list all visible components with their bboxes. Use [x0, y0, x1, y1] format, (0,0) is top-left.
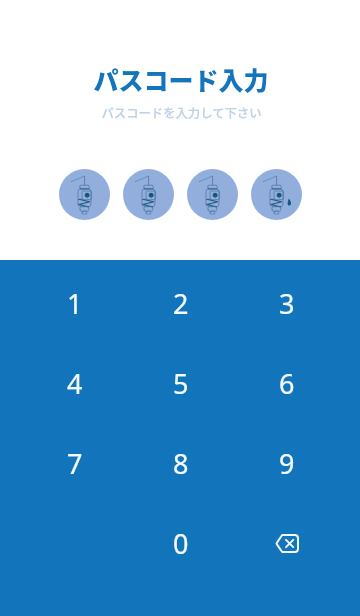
staticText: 0 — [173, 525, 189, 562]
staticText: 6 — [279, 365, 295, 402]
button[interactable]: 0 — [128, 503, 234, 583]
staticText: 7 — [67, 445, 83, 482]
button[interactable]: Delete — [234, 503, 340, 583]
button[interactable]: 6 — [234, 343, 340, 423]
staticText: 4 — [67, 365, 83, 402]
staticText: 3 — [279, 285, 295, 322]
button[interactable]: 2 — [128, 263, 234, 343]
button[interactable]: 8 — [128, 423, 234, 503]
button[interactable]: 5 — [128, 343, 234, 423]
button[interactable]: 4 — [22, 343, 128, 423]
button[interactable]: 9 — [234, 423, 340, 503]
staticText: 8 — [173, 445, 189, 482]
staticText: 5 — [173, 365, 189, 402]
staticText: 1 — [67, 285, 83, 322]
staticText: パスコード入力 — [93, 61, 269, 97]
staticText: 2 — [173, 285, 189, 322]
staticText: 9 — [279, 445, 295, 482]
button[interactable]: 7 — [22, 423, 128, 503]
button[interactable]: 1 — [22, 263, 128, 343]
staticText: パスコードを入力して下さい — [101, 104, 262, 122]
button[interactable]: 3 — [234, 263, 340, 343]
